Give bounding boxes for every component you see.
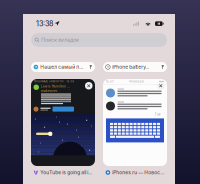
staticText: Ещё	[155, 112, 161, 116]
staticText: ЛЮБИМЫЕ НОВОСТИ · 13:38	[33, 80, 74, 83]
staticText: Поиск вкладок	[41, 37, 79, 43]
staticText: Lewis Hamilton gets a Daft Punk	[41, 84, 71, 88]
staticText: 13:37	[106, 80, 114, 83]
staticText: YouTube is going all in…	[40, 170, 93, 175]
staticText: iPhones.ru — Новост…	[112, 170, 165, 175]
staticText: iPhones.ru	[128, 80, 144, 83]
button[interactable]: 13:37	[103, 79, 167, 166]
staticText: makeover.	[41, 89, 58, 93]
button[interactable]: iPhone battery…	[103, 62, 167, 72]
button[interactable]: iPhones.ru — Новост…	[103, 168, 167, 177]
button[interactable]: ЛЮБИМЫЕ НОВОСТИ · 13:38	[31, 79, 95, 166]
button[interactable]: YouTube is going all in…	[31, 168, 95, 177]
button[interactable]: Нашел самый п…	[31, 62, 95, 72]
staticText: Нашел самый п…	[40, 64, 83, 70]
staticText: 13:38	[36, 19, 53, 28]
staticText: iPhone battery…	[112, 64, 149, 70]
